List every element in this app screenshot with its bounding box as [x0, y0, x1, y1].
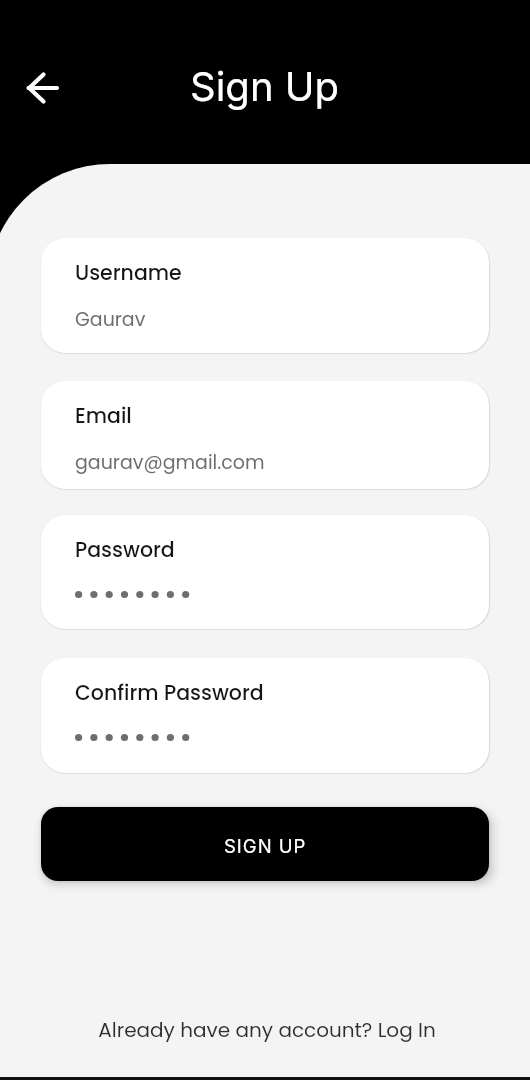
staticText: Email: [75, 401, 132, 430]
button[interactable]: Password: [41, 515, 489, 629]
staticText: Sign Up: [190, 62, 340, 110]
button[interactable]: Already have any account? Log In: [98, 1016, 436, 1044]
button[interactable]: SIGN UP: [41, 807, 489, 881]
button[interactable]: Username: [41, 238, 489, 353]
button[interactable]: Back: [26, 71, 60, 105]
button[interactable]: Confirm Password: [41, 658, 489, 773]
staticText: Gaurav: [75, 306, 146, 333]
staticText: Confirm Password: [75, 678, 264, 707]
staticText: Username: [75, 258, 182, 287]
button[interactable]: Email: [41, 381, 489, 489]
staticText: gaurav@gmail.com: [75, 449, 265, 476]
staticText: SIGN UP: [224, 835, 307, 857]
staticText: Password: [75, 535, 175, 564]
